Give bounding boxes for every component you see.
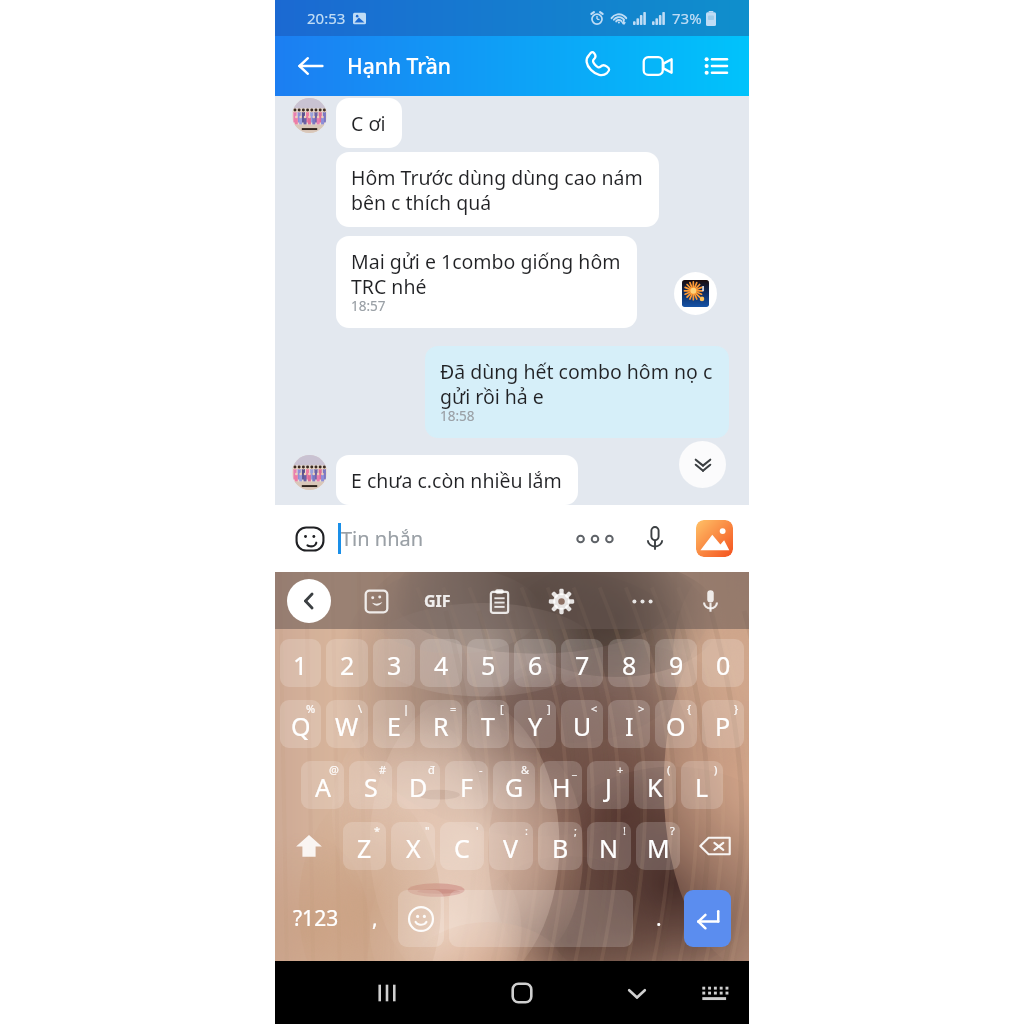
button[interactable]: E: [373, 700, 415, 748]
staticText: V: [503, 831, 519, 865]
staticText: D: [409, 770, 428, 804]
staticText: !: [623, 823, 626, 838]
button[interactable]: 3: [373, 639, 415, 687]
button[interactable]: Z: [343, 822, 386, 870]
button[interactable]: Voice input: [693, 584, 727, 618]
button[interactable]: B: [538, 822, 582, 870]
button[interactable]: 4: [420, 639, 462, 687]
button[interactable]: U: [561, 700, 603, 748]
button[interactable]: Đã dùng hết combo hôm nọ c gửi rồi hả e: [425, 346, 729, 438]
button[interactable]: Stickers: [359, 584, 393, 618]
button[interactable]: T: [467, 700, 509, 748]
staticText: 2: [340, 648, 355, 682]
staticText: 3: [387, 648, 402, 682]
button[interactable]: V: [489, 822, 533, 870]
staticText: .: [656, 904, 662, 933]
button[interactable]: C ơi: [336, 98, 402, 148]
button[interactable]: 0: [702, 639, 744, 687]
button[interactable]: 9: [655, 639, 697, 687]
staticText: I: [625, 709, 634, 743]
button[interactable]: Video call: [639, 47, 677, 85]
button[interactable]: ?123: [280, 890, 351, 947]
button[interactable]: Profile photo: [292, 455, 327, 490]
button[interactable]: Back: [293, 48, 329, 84]
button[interactable]: 6: [514, 639, 556, 687]
button[interactable]: H: [540, 761, 582, 809]
button[interactable]: W: [326, 700, 368, 748]
button[interactable]: K: [634, 761, 676, 809]
button[interactable]: J: [587, 761, 629, 809]
button[interactable]: Recent apps: [319, 961, 454, 1024]
staticText: F: [460, 770, 473, 804]
button[interactable]: 5: [467, 639, 509, 687]
button[interactable]: I: [608, 700, 650, 748]
button[interactable]: Reaction fireworks: [674, 272, 717, 315]
button[interactable]: Hôm Trước dùng dùng cao nám bên c thích …: [336, 152, 659, 227]
button[interactable]: D: [397, 761, 440, 809]
button[interactable]: Change keyboard: [685, 961, 743, 1024]
staticText: +: [617, 762, 624, 777]
button[interactable]: More: [625, 584, 659, 618]
button[interactable]: X: [391, 822, 435, 870]
button[interactable]: S: [349, 761, 392, 809]
button[interactable]: Q: [280, 700, 321, 748]
button[interactable]: Menu: [699, 49, 733, 83]
button[interactable]: G: [493, 761, 535, 809]
button[interactable]: GIF: [421, 587, 454, 615]
button[interactable]: Backspace: [685, 822, 744, 870]
button[interactable]: 2: [326, 639, 368, 687]
button[interactable]: Profile photo: [292, 98, 327, 133]
button[interactable]: 7: [561, 639, 603, 687]
staticText: -: [479, 762, 483, 777]
button[interactable]: F: [445, 761, 488, 809]
button[interactable]: M: [636, 822, 680, 870]
button[interactable]: Emoji keyboard: [398, 890, 444, 947]
button[interactable]: Enter: [684, 890, 731, 947]
button[interactable]: O: [655, 700, 697, 748]
staticText: P: [715, 709, 731, 743]
button[interactable]: C: [440, 822, 484, 870]
button[interactable]: Emoji: [292, 521, 328, 557]
button[interactable]: E chưa c.còn nhiều lắm: [336, 455, 578, 505]
staticText: _: [572, 762, 577, 777]
staticText: ?123: [293, 904, 339, 933]
button[interactable]: Home: [454, 961, 589, 1024]
button[interactable]: Mai gửi e 1combo giống hôm TRC nhé: [336, 236, 637, 328]
staticText: N: [599, 831, 619, 865]
button[interactable]: Call: [579, 47, 617, 85]
button[interactable]: .: [638, 890, 679, 947]
button[interactable]: Space: [449, 890, 633, 947]
button[interactable]: Gallery: [696, 520, 733, 557]
button[interactable]: Scroll to bottom: [679, 441, 726, 488]
button[interactable]: Clipboard: [482, 584, 516, 618]
button[interactable]: Back: [287, 579, 331, 623]
button[interactable]: Settings: [544, 584, 578, 618]
staticText: L: [695, 770, 709, 804]
button[interactable]: Y: [514, 700, 556, 748]
button[interactable]: Voice message: [636, 520, 674, 558]
staticText: 73%: [672, 8, 702, 28]
staticText: 9: [669, 648, 684, 682]
staticText: B: [552, 831, 569, 865]
button[interactable]: Hide keyboard: [589, 961, 685, 1024]
button[interactable]: Shift: [280, 822, 338, 870]
staticText: =: [450, 701, 457, 716]
staticText: U: [573, 709, 592, 743]
staticText: K: [647, 770, 663, 804]
button[interactable]: N: [587, 822, 631, 870]
button[interactable]: More options: [574, 518, 616, 560]
button[interactable]: 1: [280, 639, 321, 687]
staticText: Đã dùng hết combo hôm nọ c gửi rồi hả e: [440, 358, 713, 410]
staticText: 1: [293, 648, 308, 682]
staticText: A: [315, 770, 331, 804]
staticText: Hạnh Trần: [347, 52, 451, 81]
button[interactable]: P: [702, 700, 744, 748]
button[interactable]: R: [420, 700, 462, 748]
button[interactable]: ,: [356, 890, 393, 947]
button[interactable]: A: [301, 761, 344, 809]
button[interactable]: L: [681, 761, 723, 809]
button[interactable]: 8: [608, 639, 650, 687]
staticText: ]: [547, 701, 551, 716]
staticText: G: [505, 770, 524, 804]
staticText: ': [476, 823, 479, 838]
